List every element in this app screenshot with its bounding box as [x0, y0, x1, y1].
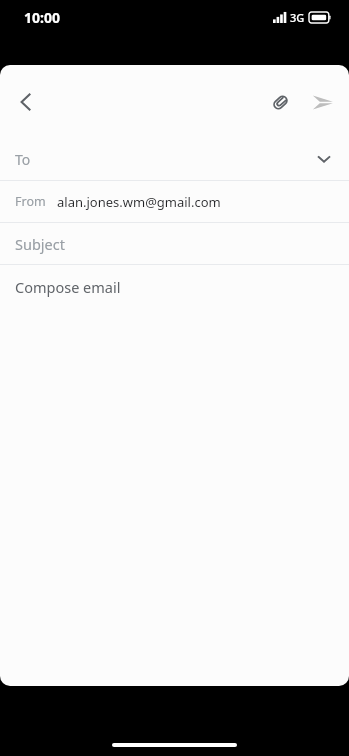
button[interactable]: To: [0, 138, 349, 180]
button[interactable]: From: [0, 181, 349, 222]
staticText: 10:00: [24, 8, 60, 27]
button[interactable]: Attach file: [259, 81, 301, 123]
staticText: From: [15, 193, 46, 210]
button[interactable]: Back: [4, 80, 48, 124]
button[interactable]: Expand recipients: [307, 142, 341, 176]
button[interactable]: Compose email: [0, 265, 349, 309]
staticText: alan.jones.wm@gmail.com: [57, 193, 221, 211]
staticText: 3G: [290, 10, 305, 25]
staticText: Compose email: [15, 277, 121, 297]
staticText: To: [15, 150, 31, 169]
button[interactable]: Send: [301, 81, 343, 123]
staticText: Subject: [15, 234, 65, 254]
button[interactable]: Subject: [0, 223, 349, 264]
